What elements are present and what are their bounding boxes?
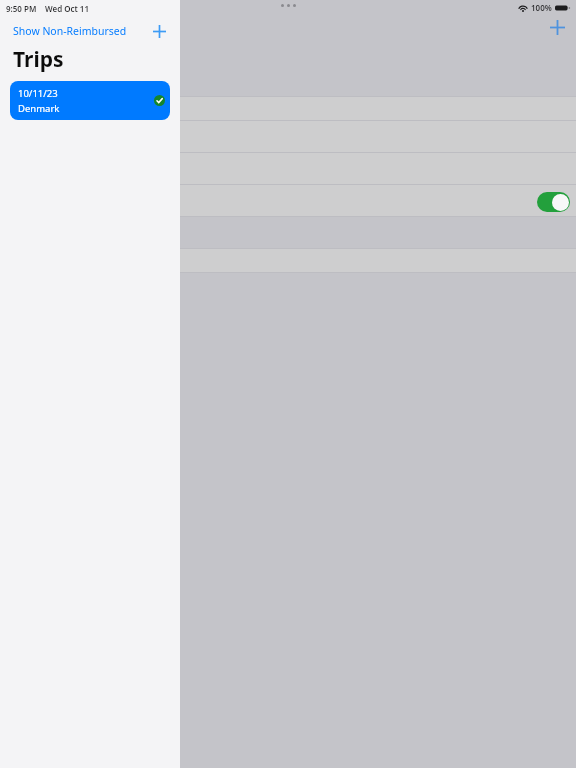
button[interactable]: Add (541, 11, 573, 43)
button[interactable]: 10/11/23 (10, 81, 170, 120)
button[interactable]: New trip (146, 18, 172, 44)
staticText: 9:50 PM (6, 3, 37, 14)
staticText: 10/11/23 (18, 87, 58, 100)
staticText: 100% (531, 2, 552, 13)
button[interactable]: Toggle setting (537, 192, 570, 212)
staticText: Denmark (18, 102, 60, 115)
staticText: Wed Oct 11 (45, 3, 90, 14)
staticText: Trips (13, 45, 64, 74)
button[interactable]: Show Non-Reimbursed (13, 19, 127, 43)
staticText: Show Non-Reimbursed (13, 24, 127, 38)
